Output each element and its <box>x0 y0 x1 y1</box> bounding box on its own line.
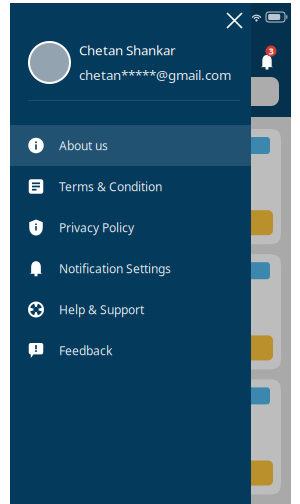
staticText: Terms & Condition <box>59 178 162 194</box>
button[interactable]: Close menu <box>222 8 247 33</box>
button[interactable]: Privacy Policy <box>10 207 251 248</box>
staticText: Chetan Shankar <box>79 41 176 59</box>
staticText: chetan*****@gmail.com <box>79 66 231 84</box>
staticText: Get a free consultation with our eco <box>32 186 230 202</box>
button[interactable]: Help & Support <box>10 289 251 330</box>
button[interactable]: Notification Settings <box>10 248 251 289</box>
staticText: Privacy Policy <box>59 219 134 235</box>
staticText: 3 <box>268 45 273 57</box>
staticText: Feedback <box>59 342 112 358</box>
staticText: Get a free consultation with our eco <box>32 311 230 327</box>
button[interactable]: Notifications <box>258 40 282 66</box>
button[interactable]: Feedback <box>10 330 251 371</box>
staticText: Free Eco Consultation <box>32 285 200 306</box>
staticText: About us <box>59 137 108 153</box>
staticText: Help & Support <box>59 301 144 317</box>
button[interactable]: About us <box>10 125 251 166</box>
button[interactable]: Terms & Condition <box>10 166 251 207</box>
staticText: Free Eco Consultation <box>32 160 200 181</box>
staticText: Notification Settings <box>59 260 171 276</box>
